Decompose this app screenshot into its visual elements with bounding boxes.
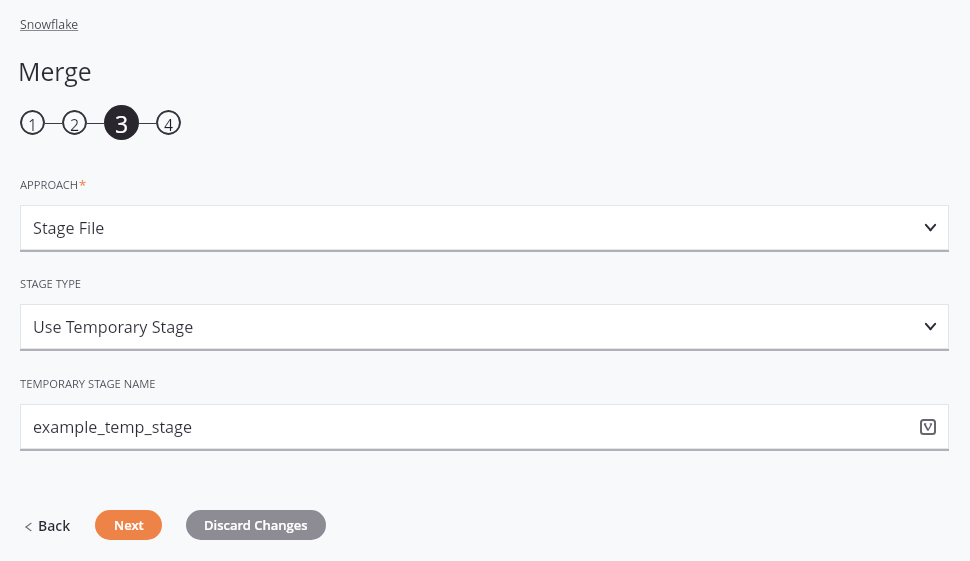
button[interactable]: Snowflake	[20, 16, 79, 33]
staticText: 3	[115, 108, 129, 139]
staticText: STAGE TYPE	[20, 276, 82, 291]
staticText: Back	[38, 516, 71, 535]
staticText: Next	[114, 516, 144, 534]
staticText: example_temp_stage	[33, 416, 193, 438]
button[interactable]: Back	[26, 510, 71, 540]
button[interactable]: example_temp_stage	[20, 404, 949, 449]
button[interactable]: 4	[156, 110, 181, 135]
staticText: *	[79, 176, 87, 194]
button[interactable]: Insert variable	[920, 419, 936, 435]
button[interactable]: Stage File	[20, 205, 949, 250]
button[interactable]: 2	[62, 110, 87, 135]
button[interactable]: 1	[20, 110, 45, 135]
button[interactable]: Next	[95, 510, 162, 540]
staticText: Stage File	[33, 217, 105, 239]
staticText: Merge	[18, 54, 92, 88]
staticText: Snowflake	[20, 16, 79, 33]
button[interactable]: Discard Changes	[186, 510, 326, 540]
staticText: 2	[70, 114, 80, 135]
staticText: Discard Changes	[204, 516, 308, 534]
other: Open dropdown	[925, 222, 936, 233]
staticText: APPROACH	[20, 177, 79, 192]
staticText: 1	[28, 114, 38, 135]
staticText: 4	[164, 114, 174, 135]
button[interactable]: Use Temporary Stage	[20, 304, 949, 349]
staticText: Use Temporary Stage	[33, 316, 194, 338]
other: Open dropdown	[925, 321, 936, 332]
staticText: TEMPORARY STAGE NAME	[20, 376, 156, 391]
button[interactable]: 3	[104, 105, 139, 140]
